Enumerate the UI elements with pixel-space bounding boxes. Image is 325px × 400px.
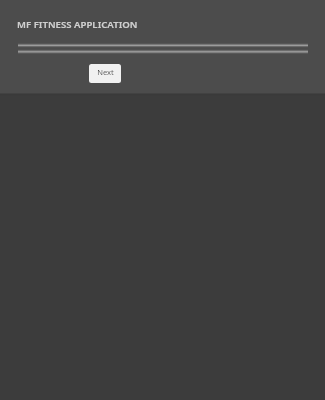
staticText: Next [97,67,114,77]
staticText: MF FITNESS APPLICATION [17,18,138,31]
button[interactable]: Next [89,64,121,83]
